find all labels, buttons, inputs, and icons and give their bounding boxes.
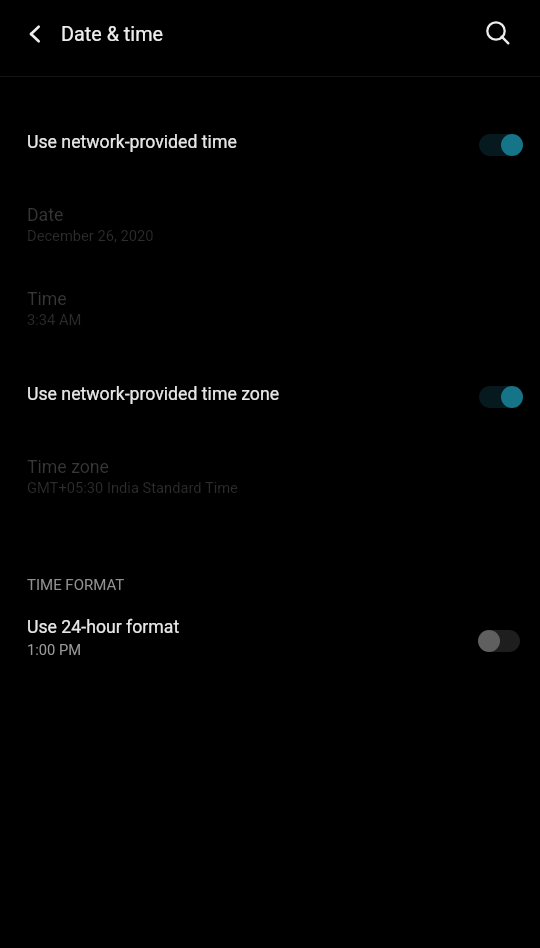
staticText: GMT+05:30 India Standard Time bbox=[27, 479, 238, 496]
staticText: 3:34 AM bbox=[27, 311, 82, 328]
staticText: Use network-provided time zone bbox=[27, 384, 280, 405]
staticText: 1:00 PM bbox=[27, 641, 82, 658]
button[interactable]: Search bbox=[474, 10, 518, 54]
staticText: December 26, 2020 bbox=[27, 227, 154, 244]
button[interactable]: Time bbox=[0, 273, 540, 333]
button[interactable]: Time zone bbox=[0, 441, 540, 501]
staticText: Date & time bbox=[61, 23, 164, 46]
button[interactable]: Use network-provided time zone bbox=[0, 370, 540, 420]
button[interactable]: Use 24-hour format bbox=[0, 610, 540, 666]
button[interactable]: Use network-provided time bbox=[0, 118, 540, 168]
staticText: Use 24-hour format bbox=[27, 617, 180, 638]
staticText: TIME FORMAT bbox=[27, 576, 125, 594]
staticText: Time zone bbox=[27, 457, 110, 478]
staticText: Date bbox=[27, 205, 64, 226]
staticText: Time bbox=[27, 289, 67, 310]
button[interactable]: Date bbox=[0, 189, 540, 249]
button[interactable]: Navigate up bbox=[23, 14, 63, 54]
staticText: Use network-provided time bbox=[27, 132, 237, 153]
